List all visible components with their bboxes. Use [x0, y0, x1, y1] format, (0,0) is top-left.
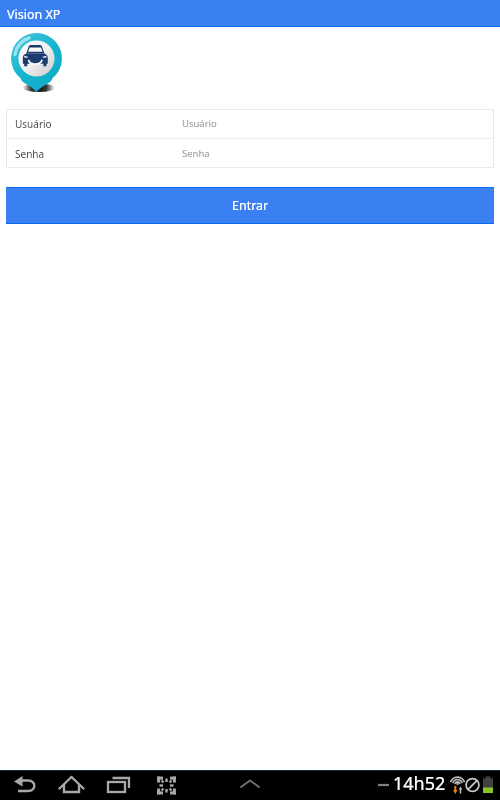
- button[interactable]: Entrar: [6, 187, 494, 224]
- staticText: Vision XP: [7, 6, 61, 23]
- button[interactable]: Usuário: [6, 109, 494, 138]
- staticText: Senha: [15, 147, 45, 161]
- staticText: 14h52: [393, 771, 446, 796]
- button[interactable]: Senha: [6, 139, 494, 168]
- button[interactable]: Screenshot: [150, 771, 188, 800]
- button[interactable]: Expand status bar: [234, 770, 266, 800]
- staticText: Entrar: [232, 197, 269, 214]
- staticText: Usuário: [15, 117, 52, 131]
- staticText: Senha: [182, 147, 210, 160]
- button[interactable]: Home: [55, 771, 95, 800]
- button[interactable]: Recent apps: [104, 771, 144, 800]
- button[interactable]: Back: [10, 771, 50, 800]
- staticText: Usuário: [182, 117, 217, 130]
